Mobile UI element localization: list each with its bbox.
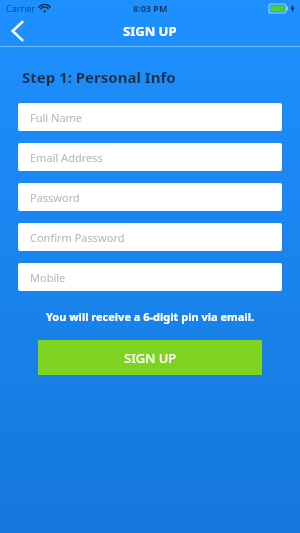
staticText: Password <box>30 190 80 205</box>
staticText: Full Name <box>30 110 83 125</box>
staticText: You will receive a 6-digit pin via email… <box>0 309 300 324</box>
button[interactable]: Mobile <box>18 263 282 291</box>
staticText: Step 1: Personal Info <box>22 67 176 87</box>
button[interactable]: Back <box>0 16 34 46</box>
button[interactable]: Email Address <box>18 143 282 171</box>
staticText: SIGN UP <box>123 22 177 40</box>
staticText: Confirm Password <box>30 230 125 245</box>
staticText: SIGN UP <box>124 349 177 367</box>
staticText: Email Address <box>30 150 103 165</box>
button[interactable]: Confirm Password <box>18 223 282 251</box>
staticText: Carrier <box>6 2 36 14</box>
staticText: 8:03 PM <box>133 2 168 14</box>
button[interactable]: SIGN UP <box>38 340 262 375</box>
button[interactable]: Password <box>18 183 282 211</box>
staticText: Mobile <box>30 270 66 285</box>
button[interactable]: Full Name <box>18 103 282 131</box>
